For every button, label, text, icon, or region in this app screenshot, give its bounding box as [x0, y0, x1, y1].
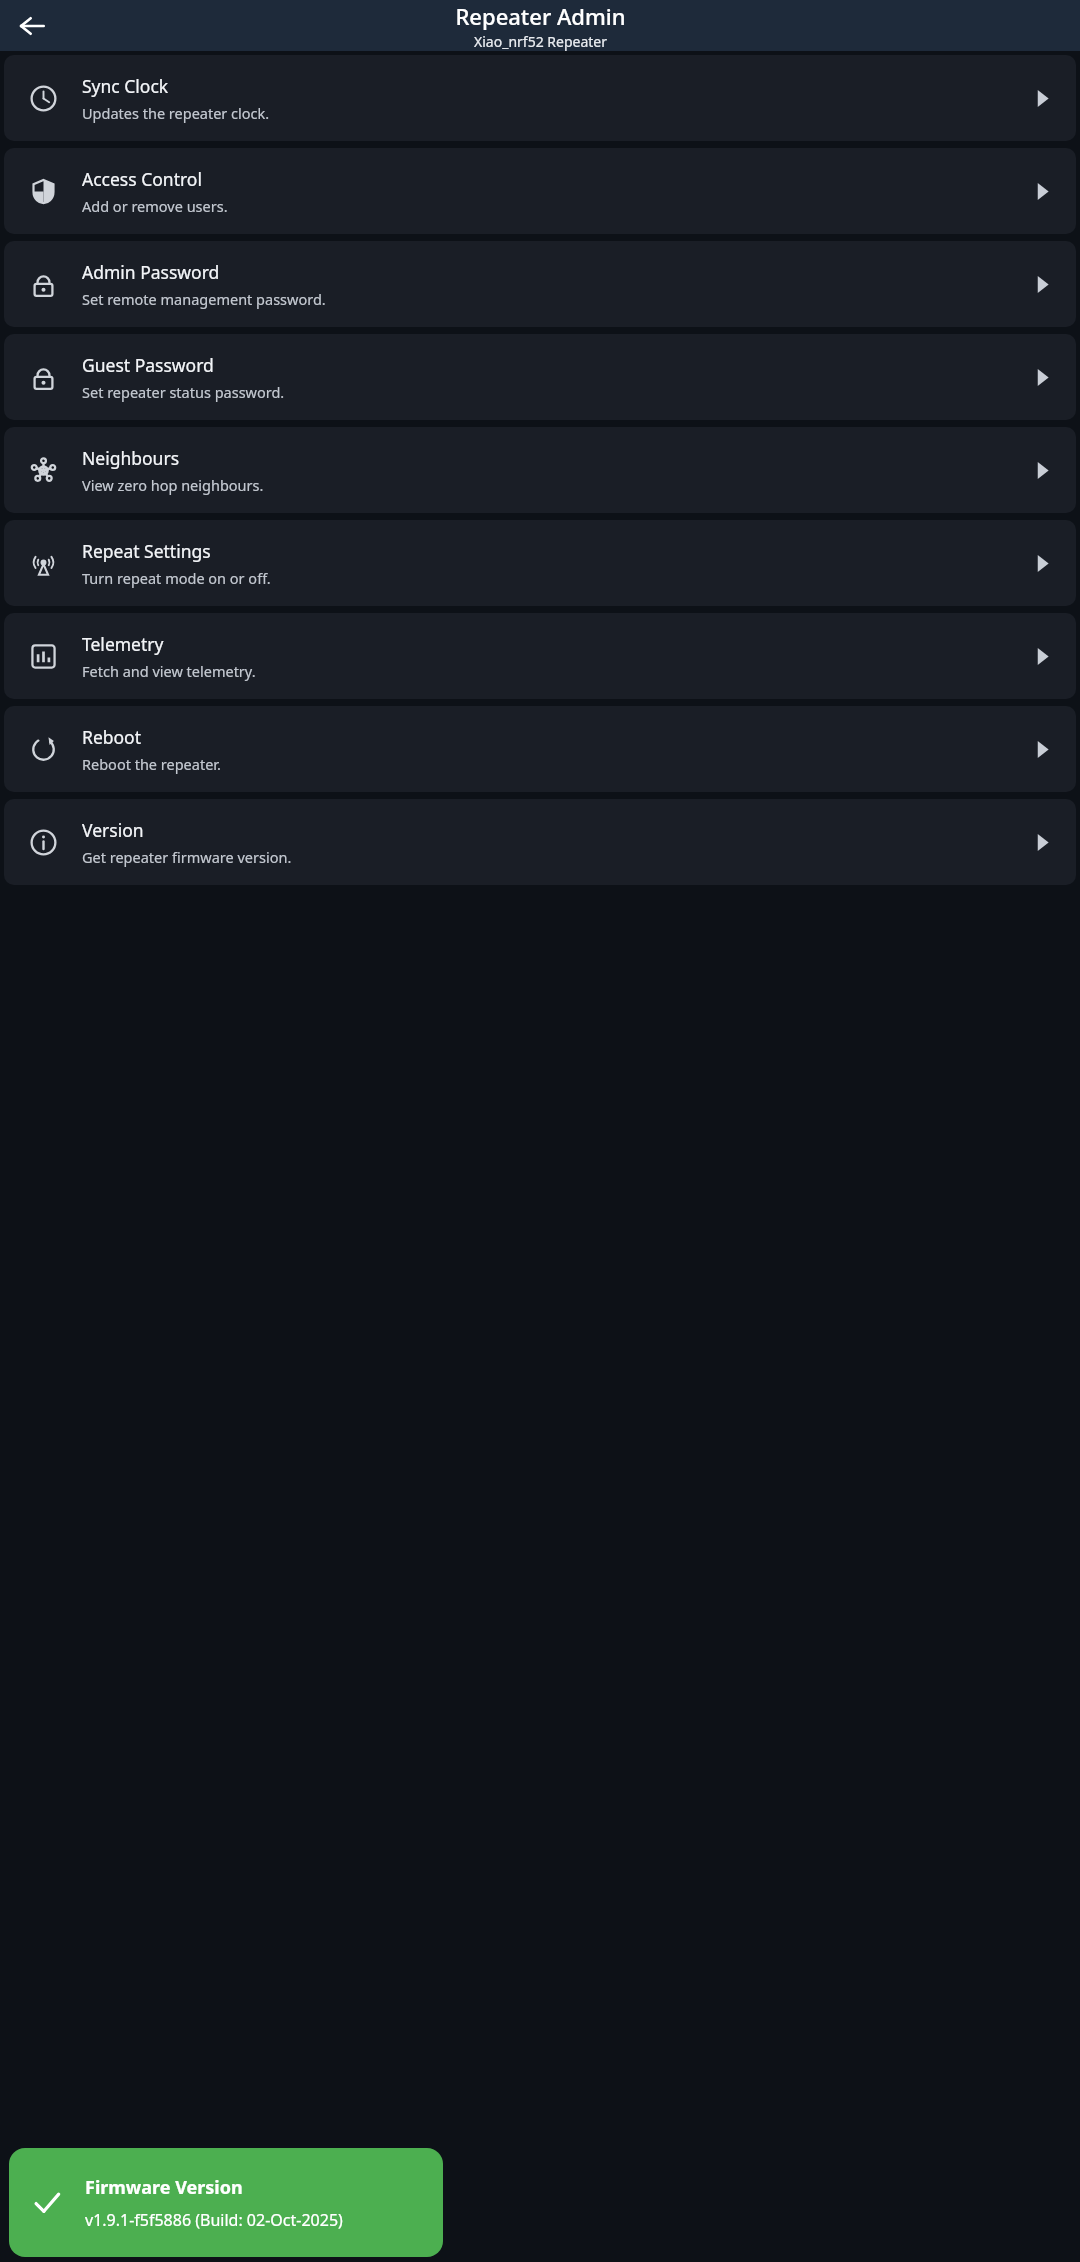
button[interactable]: Guest Password	[4, 334, 1076, 420]
staticText: Fetch and view telemetry.	[82, 661, 256, 681]
staticText: Updates the repeater clock.	[82, 103, 270, 123]
button[interactable]: Firmware Version	[9, 2148, 443, 2257]
staticText: View zero hop neighbours.	[82, 475, 264, 495]
staticText: Reboot	[82, 725, 142, 749]
staticText: Xiao_nrf52 Repeater	[474, 32, 607, 51]
staticText: Repeat Settings	[82, 539, 211, 563]
staticText: Neighbours	[82, 446, 180, 470]
button[interactable]: Access Control	[4, 148, 1076, 234]
button[interactable]: Sync Clock	[4, 55, 1076, 141]
staticText: Repeater Admin	[455, 1, 626, 31]
button[interactable]: Admin Password	[4, 241, 1076, 327]
staticText: Version	[82, 818, 144, 842]
staticText: Set repeater status password.	[82, 382, 285, 402]
staticText: Firmware Version	[85, 2175, 243, 2200]
staticText: Admin Password	[82, 260, 220, 284]
staticText: Telemetry	[82, 632, 164, 656]
button[interactable]: Reboot	[4, 706, 1076, 792]
button[interactable]: Telemetry	[4, 613, 1076, 699]
staticText: Sync Clock	[82, 74, 169, 98]
staticText: v1.9.1-f5f5886 (Build: 02-Oct-2025)	[85, 2209, 343, 2231]
staticText: Get repeater firmware version.	[82, 847, 292, 867]
staticText: Guest Password	[82, 353, 214, 377]
button[interactable]: Back	[10, 4, 54, 48]
button[interactable]: Neighbours	[4, 427, 1076, 513]
staticText: Turn repeat mode on or off.	[82, 568, 271, 588]
button[interactable]: Repeat Settings	[4, 520, 1076, 606]
staticText: Access Control	[82, 167, 202, 191]
button[interactable]: Version	[4, 799, 1076, 885]
staticText: Add or remove users.	[82, 196, 228, 216]
staticText: Reboot the repeater.	[82, 754, 221, 774]
staticText: Set remote management password.	[82, 289, 326, 309]
